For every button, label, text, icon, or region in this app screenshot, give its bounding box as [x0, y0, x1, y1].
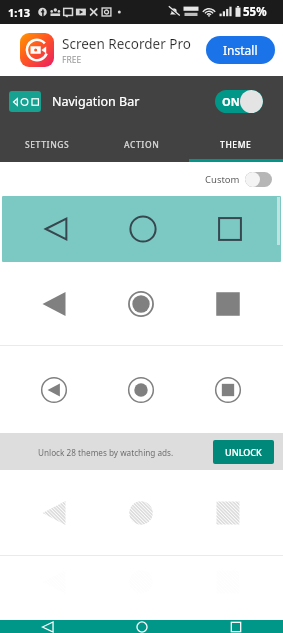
staticText: ACTION: [124, 139, 160, 151]
staticText: UNLOCK: [225, 446, 262, 458]
button[interactable]: ACTION: [95, 127, 189, 162]
button[interactable]: Navigation bar on/off: [215, 90, 263, 113]
staticText: Install: [223, 42, 258, 58]
staticText: FREE: [62, 54, 82, 66]
button[interactable]: SETTINGS: [0, 127, 95, 162]
button[interactable]: Back: [0, 620, 95, 633]
button[interactable]: Install: [206, 36, 275, 64]
staticText: Unlock 28 themes by watching ads.: [38, 447, 174, 458]
button[interactable]: UNLOCK: [213, 440, 274, 464]
staticText: 55%: [243, 4, 267, 20]
staticText: 1:13: [8, 5, 30, 20]
staticText: Custom: [205, 173, 240, 186]
staticText: SETTINGS: [25, 139, 70, 151]
button[interactable]: [0, 346, 283, 433]
button[interactable]: Custom toggle: [245, 172, 272, 187]
staticText: THEME: [220, 139, 252, 151]
button[interactable]: THEME: [189, 127, 283, 162]
staticText: ON: [222, 94, 240, 109]
button[interactable]: Home: [95, 620, 189, 633]
button[interactable]: Recents: [189, 620, 283, 633]
staticText: Screen Recorder Pro: [62, 35, 191, 53]
button[interactable]: [2, 196, 281, 262]
button[interactable]: [0, 470, 283, 555]
staticText: Navigation Bar: [52, 93, 140, 110]
button[interactable]: [0, 262, 283, 345]
